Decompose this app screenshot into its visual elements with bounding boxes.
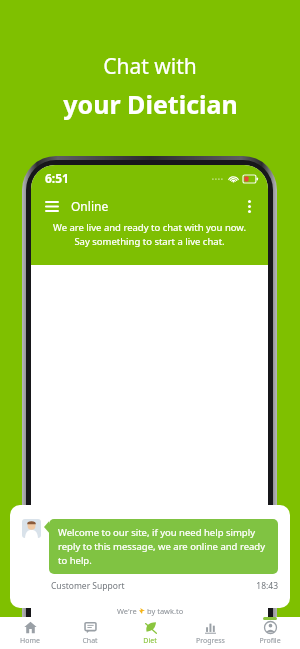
staticText: Online: [71, 198, 109, 214]
staticText: Diet: [143, 636, 157, 646]
button[interactable]: Welcome to our site, if you need help si…: [58, 526, 269, 567]
button[interactable]: Menu: [39, 193, 65, 219]
button[interactable]: Progress: [180, 617, 240, 649]
button[interactable]: Profile: [240, 617, 300, 649]
staticText: Progress: [196, 636, 225, 646]
staticText: Profile: [259, 636, 281, 646]
staticText: by tawk.to: [145, 606, 184, 616]
staticText: 18:43: [256, 580, 278, 592]
staticText: 6:51: [45, 170, 69, 186]
button[interactable]: Chat: [60, 617, 120, 649]
staticText: Home: [20, 636, 40, 646]
staticText: Chat: [82, 636, 98, 646]
staticText: We are live and ready to chat with you n…: [45, 221, 254, 248]
staticText: Customer Support: [51, 580, 125, 592]
button[interactable]: Diet: [120, 617, 180, 649]
staticText: your Dietician: [63, 87, 238, 121]
button[interactable]: Home: [0, 617, 60, 649]
button[interactable]: More options: [236, 193, 262, 219]
staticText: Chat with: [103, 52, 197, 81]
staticText: Welcome to our site, if you need help si…: [58, 526, 269, 567]
staticText: We're: [117, 606, 139, 616]
